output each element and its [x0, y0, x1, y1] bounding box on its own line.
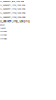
staticText: IMAGES — [0, 30, 7, 33]
staticText: IMAGES — [0, 33, 7, 36]
staticText: IMAGES — [0, 37, 7, 40]
staticText: IMAGES — [0, 27, 6, 29]
staticText: IL_0ab009f1_img_1200.png — [0, 0, 24, 2]
staticText: IL_0ab009f1_img_1200.png — [0, 11, 25, 14]
staticText: IL_0ab009f1_img_1200.png — [0, 19, 30, 23]
staticText: IL_0ab009f1_img_1200.png — [0, 7, 25, 10]
staticText: IL_0ab009f1_img_1200.png — [0, 15, 25, 19]
staticText: IL_0ab009f1_img_1200.png — [0, 3, 25, 6]
staticText: IMAGES — [0, 24, 5, 26]
